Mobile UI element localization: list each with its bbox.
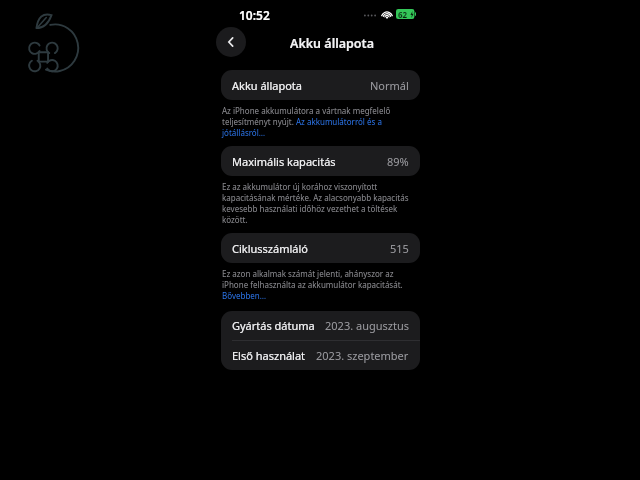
button[interactable]: Akku állapota [221,70,420,100]
staticText: 89% [387,154,409,169]
staticText: 62 [398,9,408,19]
button[interactable]: Gyártás dátuma [221,311,420,340]
button[interactable]: Ciklusszámláló [221,233,420,263]
staticText: 10:52 [239,7,270,23]
staticText: Normál [370,78,409,93]
staticText: 2023. augusztus [325,318,409,333]
staticText: Első használat [232,348,306,363]
staticText: Az iPhone akkumulátora a vártnak megfele… [222,105,419,138]
staticText: Gyártás dátuma [232,318,315,333]
button[interactable]: Első használat [221,341,420,370]
staticText: Ciklusszámláló [232,241,308,256]
staticText: 515 [390,241,409,256]
staticText: Maximális kapacitás [232,154,336,169]
staticText: 2023. szeptember [316,348,409,363]
staticText: Ez azon alkalmak számát jelenti, ahánysz… [222,268,419,301]
staticText: Ez az akkumulátor új korához viszonyítot… [222,181,419,225]
staticText: Akku állapota [232,78,303,93]
button[interactable]: Maximális kapacitás [221,146,420,176]
button[interactable]: Back [216,27,246,57]
staticText: Akku állapota [290,35,374,52]
